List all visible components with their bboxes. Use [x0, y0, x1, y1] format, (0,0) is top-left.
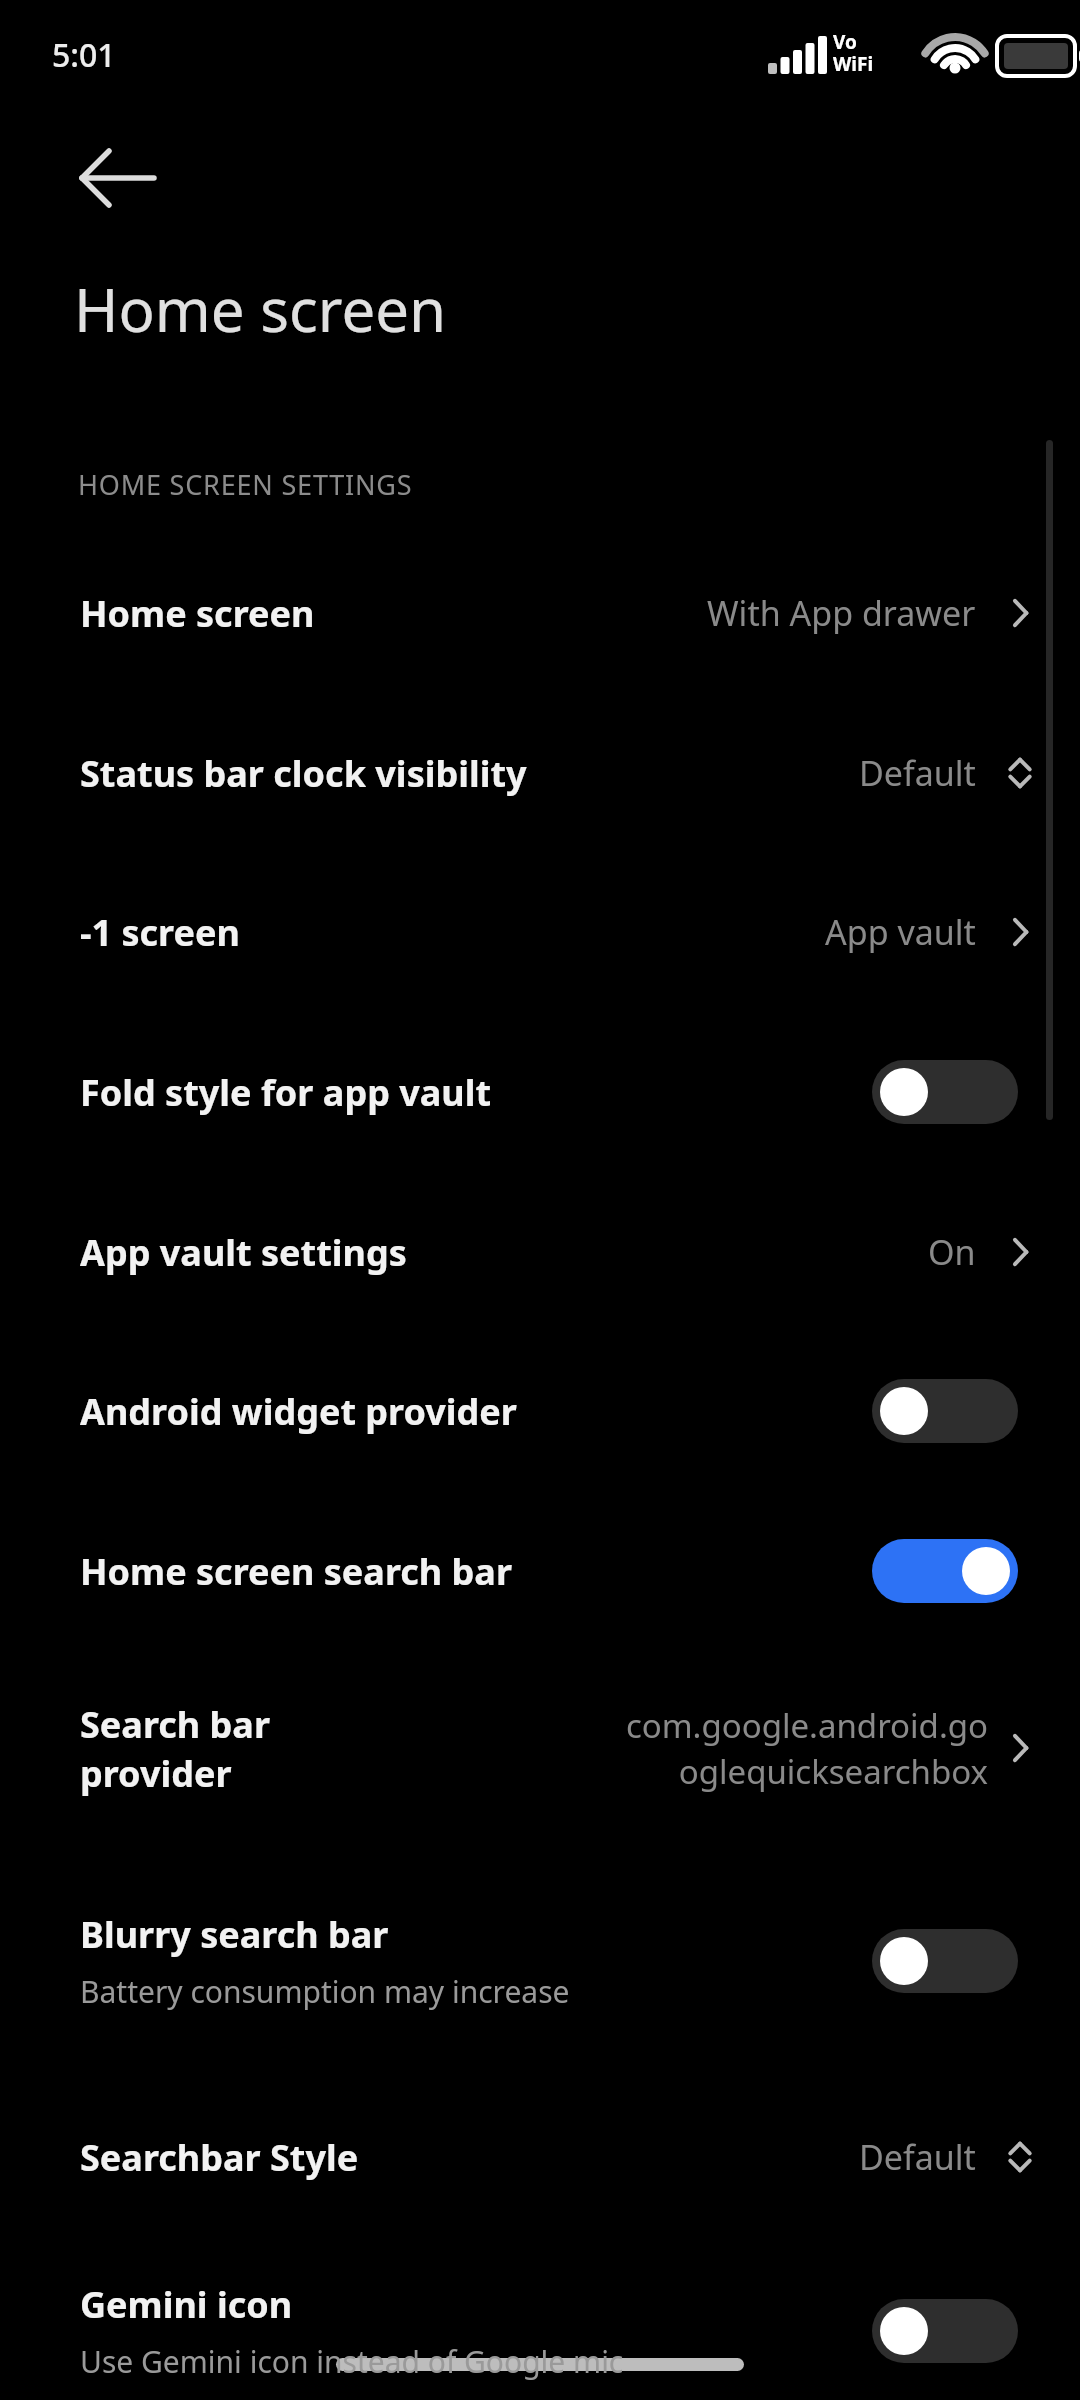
button[interactable]: -1 screen — [0, 885, 1080, 979]
staticText: HOME SCREEN SETTINGS — [78, 466, 413, 503]
staticText: Blurry search bar — [80, 1910, 389, 1959]
button[interactable]: Home screen search bar — [872, 1539, 1018, 1603]
button[interactable]: Home screen — [0, 566, 1080, 660]
staticText: Home screen — [74, 268, 447, 350]
button[interactable]: Blurry search bar — [872, 1929, 1018, 1993]
staticText: Default — [859, 750, 976, 796]
staticText: 92 — [1013, 41, 1042, 75]
button[interactable]: Status bar clock visibility — [0, 726, 1080, 820]
staticText: Android widget provider — [80, 1387, 517, 1436]
staticText: Gemini icon — [80, 2280, 293, 2329]
staticText: Home screen — [80, 589, 315, 638]
staticText: App vault — [825, 909, 976, 955]
button[interactable]: Android widget provider — [872, 1379, 1018, 1443]
staticText: Searchbar Style — [80, 2133, 359, 2182]
staticText: App vault settings — [80, 1228, 407, 1277]
staticText: Battery consumption may increase — [80, 1971, 570, 2012]
staticText: Vo — [833, 29, 857, 55]
staticText: com.google.android.go oglequicksearchbox — [518, 1703, 988, 1794]
staticText: 5:01 — [52, 33, 116, 77]
staticText: On — [928, 1229, 976, 1275]
staticText: With App drawer — [707, 590, 976, 636]
staticText: WiFi — [833, 51, 874, 77]
button[interactable]: Back — [70, 132, 164, 226]
button[interactable]: Android widget provider — [0, 1364, 1080, 1458]
button[interactable]: Home screen search bar — [0, 1524, 1080, 1618]
button[interactable]: Fold style for app vault — [872, 1060, 1018, 1124]
staticText: Home screen search bar — [80, 1547, 513, 1596]
button[interactable]: Search bar provider — [0, 1678, 1080, 1818]
button[interactable]: Gemini icon — [0, 2268, 1080, 2394]
staticText: Search bar provider — [80, 1700, 271, 1797]
button[interactable]: Blurry search bar — [0, 1898, 1080, 2024]
staticText: -1 screen — [80, 908, 240, 957]
button[interactable]: Fold style for app vault — [0, 1045, 1080, 1139]
staticText: Use Gemini icon instead of Google mic — [80, 2341, 624, 2382]
button[interactable]: App vault settings — [0, 1205, 1080, 1299]
button[interactable]: Searchbar Style — [0, 2110, 1080, 2204]
staticText: Default — [859, 2134, 976, 2180]
staticText: Fold style for app vault — [80, 1068, 492, 1117]
button[interactable]: Gemini icon — [872, 2299, 1018, 2363]
staticText: Status bar clock visibility — [80, 749, 527, 798]
